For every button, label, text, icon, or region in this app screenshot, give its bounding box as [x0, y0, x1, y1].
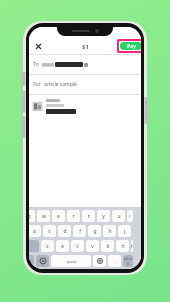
staticText: b [106, 243, 110, 250]
staticText: z [46, 243, 49, 250]
staticText: a [33, 228, 36, 235]
staticText: return [123, 256, 133, 266]
staticText: For [33, 81, 41, 88]
staticText: 123 [29, 259, 32, 264]
button[interactable]: r [67, 210, 80, 222]
staticText: u [117, 213, 121, 220]
button[interactable]: Emoji [36, 255, 49, 267]
staticText: s [48, 228, 51, 235]
staticText: w [42, 213, 46, 220]
button[interactable]: n [116, 240, 129, 252]
button[interactable]: Pay [120, 42, 141, 50]
staticText: v [91, 243, 94, 250]
staticText: n [121, 243, 125, 250]
staticText: x [61, 243, 64, 250]
button[interactable]: w [37, 210, 50, 222]
button[interactable]: d [58, 225, 71, 237]
button[interactable]: y [97, 210, 110, 222]
button[interactable]: a [29, 225, 41, 237]
staticText: c [76, 243, 79, 250]
staticText: d [63, 228, 67, 235]
button[interactable]: c [71, 240, 84, 252]
button[interactable]: s [43, 225, 56, 237]
button[interactable]: x [56, 240, 69, 252]
button[interactable] [29, 95, 141, 117]
button[interactable]: space [51, 255, 91, 267]
staticText: f [79, 228, 81, 235]
button[interactable]: z [41, 240, 54, 252]
button[interactable]: Close [32, 40, 44, 52]
button[interactable]: t [82, 210, 95, 222]
staticText: . [114, 258, 116, 264]
button[interactable]: g [88, 225, 101, 237]
button[interactable]: i [127, 210, 133, 222]
staticText: e [57, 213, 60, 220]
staticText: j [124, 228, 126, 235]
staticText: r [72, 213, 75, 220]
staticText: $1 [82, 43, 89, 51]
staticText: h [108, 228, 112, 235]
staticText: q [29, 213, 31, 220]
button[interactable]: q [29, 210, 35, 222]
staticText: i [129, 213, 131, 220]
button[interactable]: h [103, 225, 116, 237]
button[interactable]: u [112, 210, 125, 222]
button[interactable]: 123 [29, 255, 34, 267]
staticText: Pay [127, 43, 136, 50]
staticText: y [102, 213, 105, 220]
staticText: m [131, 243, 133, 250]
button[interactable]: m [131, 240, 133, 252]
button[interactable]: To [29, 55, 141, 74]
button[interactable]: e [52, 210, 65, 222]
staticText: To [33, 61, 39, 68]
staticText: space [66, 259, 77, 264]
button[interactable]: j [118, 225, 131, 237]
staticText: article sample [44, 81, 77, 88]
button[interactable]: f [73, 225, 86, 237]
button[interactable]: At sign [93, 255, 106, 267]
button[interactable]: b [101, 240, 114, 252]
button[interactable]: . [108, 255, 121, 267]
button[interactable]: For [29, 75, 141, 94]
button[interactable]: Shift [29, 240, 39, 252]
staticText: t [88, 213, 90, 220]
staticText: g [93, 228, 97, 235]
button[interactable]: v [86, 240, 99, 252]
button[interactable]: return [123, 255, 133, 267]
